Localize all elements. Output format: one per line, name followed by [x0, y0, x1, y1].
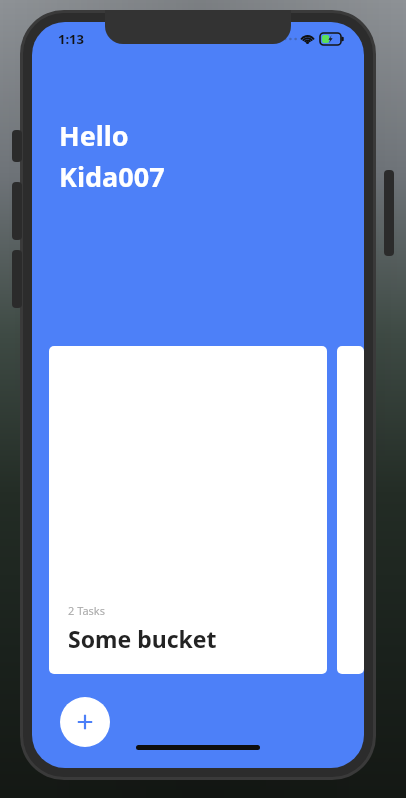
staticText: 2 Tasks	[68, 603, 105, 618]
button[interactable]: 2 Tasks	[49, 346, 327, 674]
staticText: 1:13	[58, 30, 84, 48]
staticText: Hello	[59, 117, 129, 154]
button[interactable]: Add bucket	[60, 697, 110, 747]
button[interactable]	[337, 346, 364, 674]
staticText: Some bucket	[68, 623, 217, 654]
staticText: Kida007	[59, 158, 165, 195]
